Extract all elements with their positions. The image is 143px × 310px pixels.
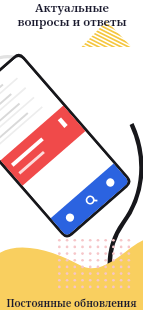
button[interactable]: Phone app preview xyxy=(27,100,117,210)
button[interactable]: Постоянные обновления xyxy=(6,296,137,310)
button[interactable]: Актуальные вопросы и ответы xyxy=(17,0,127,29)
